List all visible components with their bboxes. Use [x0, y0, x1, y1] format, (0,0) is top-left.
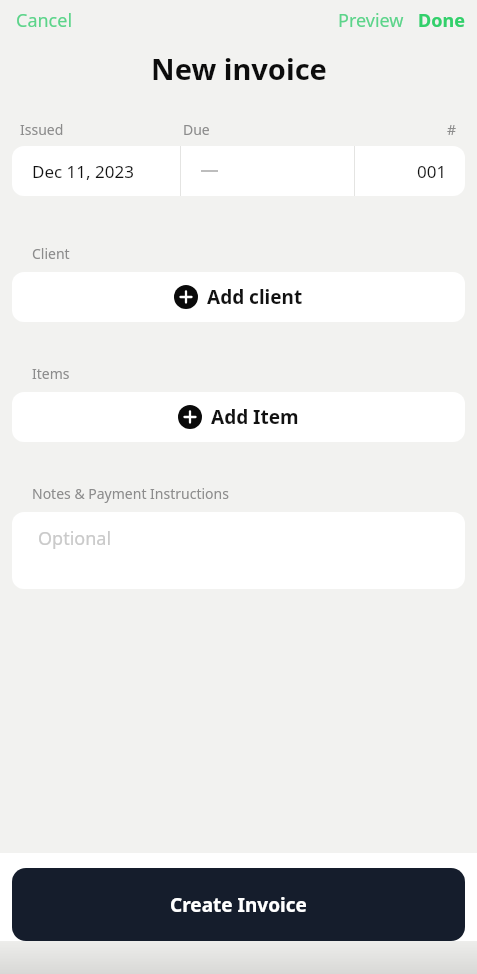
- staticText: Preview: [338, 8, 404, 33]
- button[interactable]: 001: [355, 146, 465, 196]
- staticText: Add Item: [211, 404, 299, 430]
- button[interactable]: Add client: [12, 272, 465, 322]
- button[interactable]: Optional: [12, 512, 465, 589]
- staticText: Notes & Payment Instructions: [32, 484, 229, 503]
- staticText: Dec 11, 2023: [32, 160, 134, 183]
- button[interactable]: Done: [412, 4, 471, 37]
- button[interactable]: Cancel: [8, 4, 81, 37]
- staticText: Client: [32, 244, 70, 263]
- staticText: Cancel: [16, 8, 73, 33]
- staticText: Create Invoice: [170, 892, 307, 918]
- button[interactable]: Dec 11, 2023: [12, 146, 180, 196]
- staticText: Items: [32, 364, 70, 383]
- staticText: Done: [418, 8, 465, 33]
- staticText: Add client: [207, 284, 303, 310]
- staticText: Due: [183, 120, 210, 139]
- staticText: Optional: [38, 526, 112, 551]
- staticText: #: [447, 120, 457, 139]
- button[interactable]: [181, 146, 354, 196]
- staticText: Issued: [20, 120, 64, 139]
- button[interactable]: Preview: [332, 4, 410, 37]
- staticText: 001: [417, 160, 447, 183]
- button[interactable]: Create Invoice: [12, 868, 465, 941]
- staticText: New invoice: [151, 49, 327, 88]
- button[interactable]: Add Item: [12, 392, 465, 442]
